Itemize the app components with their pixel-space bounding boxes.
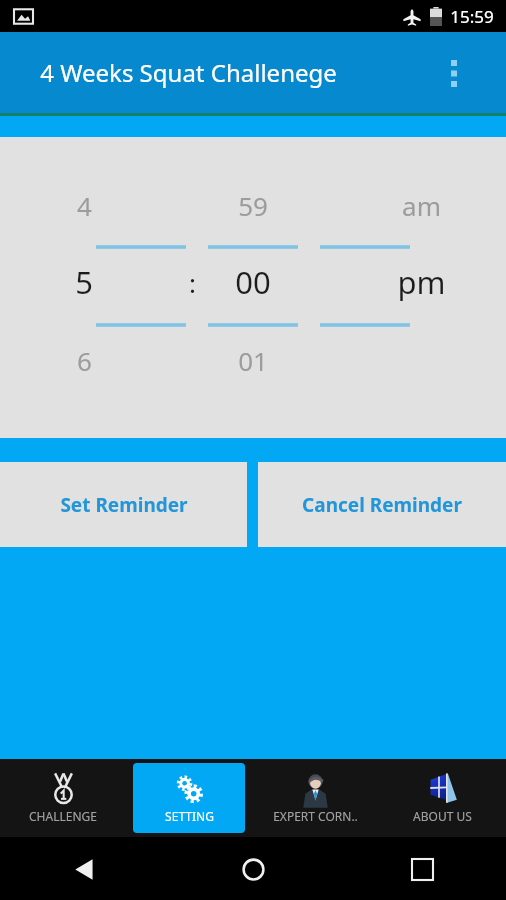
staticText: 15:59 <box>450 5 494 28</box>
staticText: EXPERT CORN.. <box>273 808 358 824</box>
staticText: SETTING <box>165 808 214 824</box>
staticText: 59 <box>238 188 268 223</box>
staticText: CHALLENGE <box>29 808 97 824</box>
button[interactable]: EXPERT CORN.. <box>252 763 379 833</box>
staticText: 5 <box>75 261 93 303</box>
button[interactable]: ABOUT US <box>379 763 506 833</box>
staticText: pm <box>397 261 446 303</box>
staticText: Cancel Reminder <box>302 492 462 518</box>
button[interactable]: CHALLENGE <box>0 763 126 833</box>
button[interactable]: Set Reminder <box>0 462 247 547</box>
button[interactable]: Recent apps <box>399 846 445 892</box>
staticText: 01 <box>238 343 268 378</box>
staticText: : <box>189 265 196 300</box>
staticText: 4 Weeks Squat Challenege <box>40 56 337 89</box>
button[interactable]: SETTING <box>133 763 245 833</box>
staticText: ABOUT US <box>413 808 472 824</box>
button[interactable]: Cancel Reminder <box>258 462 506 547</box>
button[interactable]: Back <box>61 846 107 892</box>
staticText: 4 <box>77 188 92 223</box>
button[interactable]: Home <box>230 846 276 892</box>
staticText: am <box>402 188 441 223</box>
button[interactable]: More options <box>436 55 472 91</box>
staticText: Set Reminder <box>60 492 188 518</box>
staticText: 00 <box>235 261 271 303</box>
staticText: 6 <box>77 343 92 378</box>
